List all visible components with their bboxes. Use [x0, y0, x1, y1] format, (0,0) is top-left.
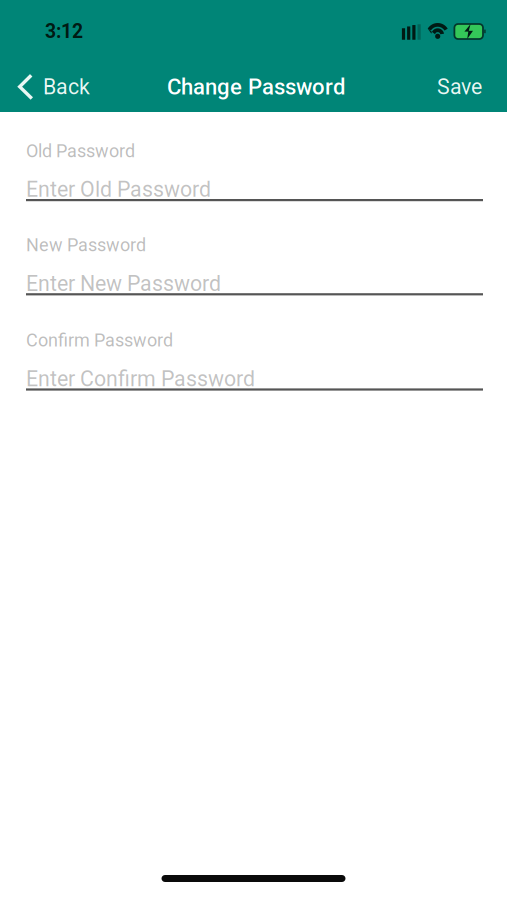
- staticText: Enter Old Password: [26, 177, 211, 202]
- staticText: Back: [43, 74, 90, 99]
- staticText: Confirm Password: [26, 330, 173, 351]
- staticText: New Password: [26, 235, 146, 256]
- staticText: Enter Confirm Password: [26, 366, 255, 391]
- staticText: Change Password: [167, 74, 345, 100]
- staticText: Old Password: [26, 140, 135, 162]
- button[interactable]: Old Password: [26, 142, 483, 201]
- button[interactable]: Save: [423, 61, 507, 113]
- button[interactable]: Confirm Password: [26, 331, 483, 391]
- staticText: Enter New Password: [26, 271, 221, 296]
- button[interactable]: New Password: [26, 236, 483, 295]
- staticText: Save: [437, 74, 482, 99]
- button[interactable]: Back: [0, 61, 102, 113]
- staticText: 3:12: [45, 20, 83, 43]
